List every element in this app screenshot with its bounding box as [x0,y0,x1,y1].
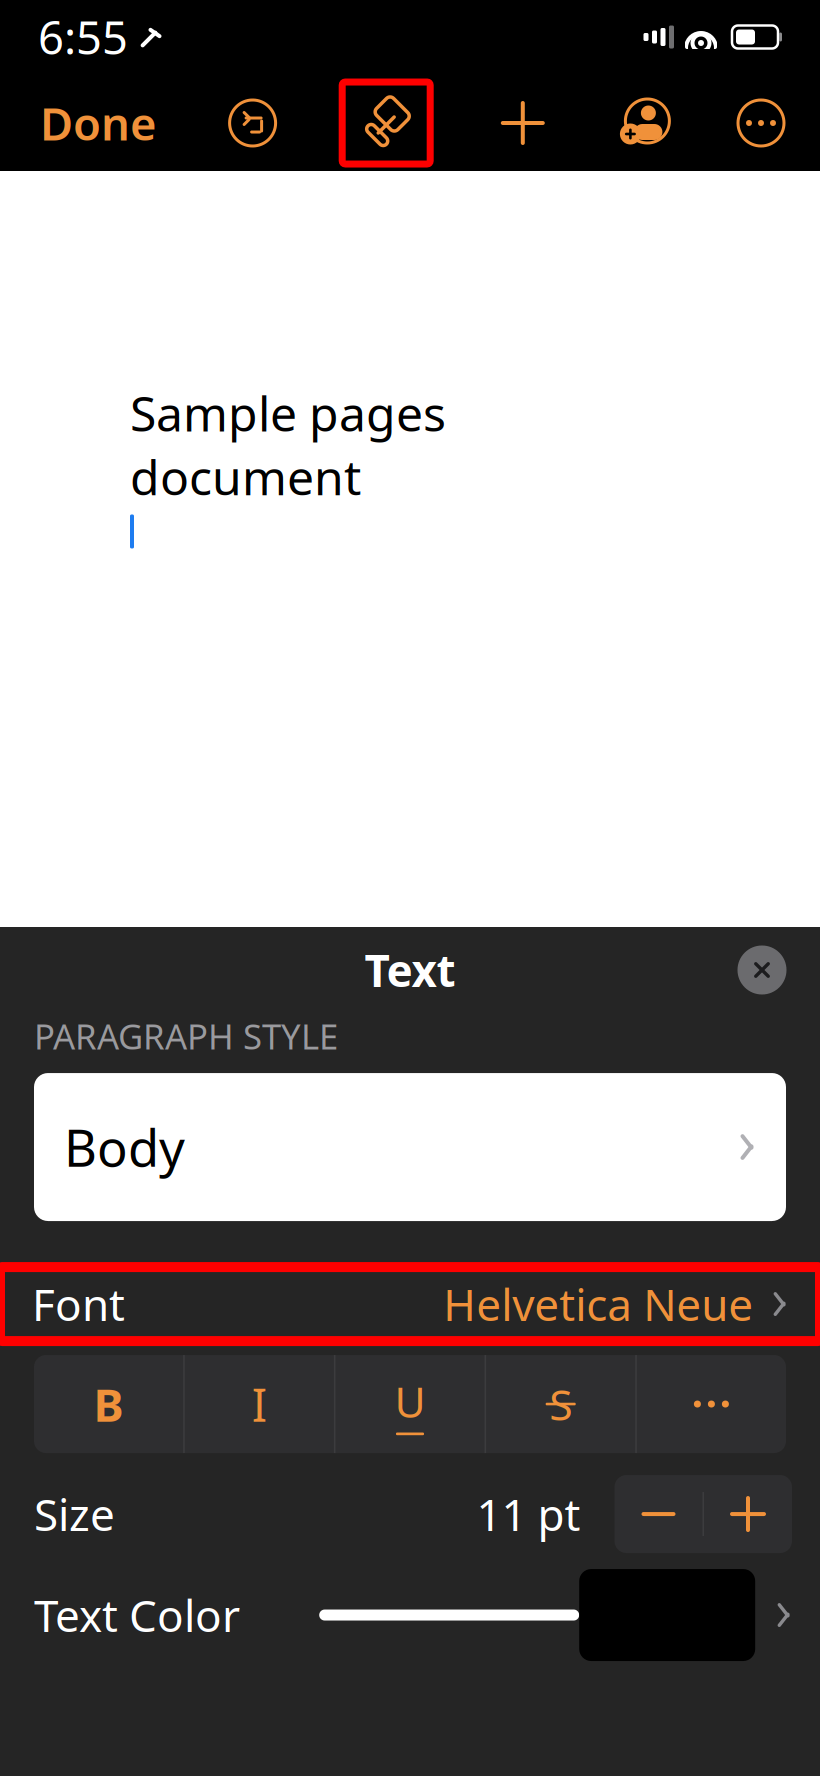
staticText: Sample pages document [130,381,446,508]
staticText: PARAGRAPH STYLE [34,1013,338,1059]
button[interactable]: I [185,1355,334,1453]
button[interactable]: Font [0,1267,820,1341]
button[interactable]: Increase size [704,1475,792,1553]
staticText: Body [64,1113,185,1181]
staticText: Text Color [34,1586,240,1644]
staticText: 11 pt [476,1485,580,1543]
button[interactable]: Done [34,83,163,163]
staticText: Size [34,1485,115,1543]
staticText: Helvetica Neue [443,1275,753,1333]
staticText: 6:55 [38,7,128,67]
button[interactable]: Close [732,940,792,1000]
button[interactable]: Collaborate [615,98,671,148]
button[interactable]: Text Color [0,1569,820,1661]
staticText: U [394,1373,425,1430]
button[interactable]: S [486,1355,635,1453]
button[interactable]: More [736,98,786,148]
button[interactable]: Decrease size [614,1475,702,1553]
staticText: Done [40,93,157,153]
staticText: Text [364,941,455,999]
staticText: Font [32,1275,125,1333]
staticText: S [549,1376,572,1432]
button[interactable]: U [335,1355,485,1453]
button[interactable]: Body [34,1073,786,1221]
button[interactable]: B [34,1355,183,1453]
button[interactable]: Insert [495,95,551,151]
button[interactable] [637,1355,786,1453]
button[interactable]: Undo [228,98,278,148]
staticText: B [94,1374,124,1434]
button[interactable]: Format [342,82,430,164]
staticText: I [252,1374,267,1434]
